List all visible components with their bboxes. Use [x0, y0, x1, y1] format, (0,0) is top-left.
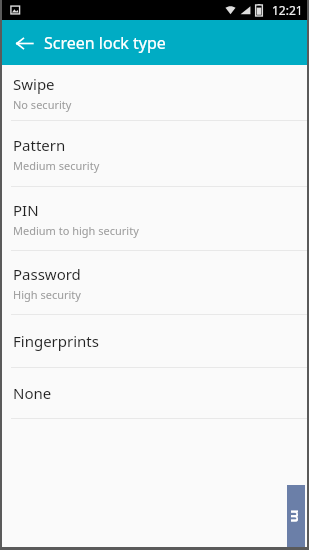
- staticText: No security: [13, 97, 72, 112]
- button[interactable]: Pattern: [0, 121, 309, 186]
- staticText: Password: [13, 264, 81, 284]
- staticText: Screen lock type: [44, 32, 166, 54]
- staticText: 12:21: [272, 2, 303, 18]
- button[interactable]: None: [0, 368, 309, 418]
- staticText: Pattern: [13, 135, 66, 155]
- staticText: High security: [13, 287, 81, 302]
- staticText: Medium security: [13, 158, 100, 173]
- button[interactable]: PIN: [0, 187, 309, 250]
- staticText: Medium to high security: [13, 223, 139, 238]
- staticText: Swipe: [13, 74, 55, 94]
- staticText: None: [13, 383, 52, 403]
- button[interactable]: Navigate up: [10, 29, 38, 57]
- button[interactable]: Fingerprints: [0, 315, 309, 367]
- button[interactable]: Swipe: [0, 65, 309, 120]
- button[interactable]: Password: [0, 251, 309, 314]
- staticText: mobile.ir: [287, 507, 305, 525]
- staticText: PIN: [13, 200, 39, 220]
- staticText: Fingerprints: [13, 331, 99, 351]
